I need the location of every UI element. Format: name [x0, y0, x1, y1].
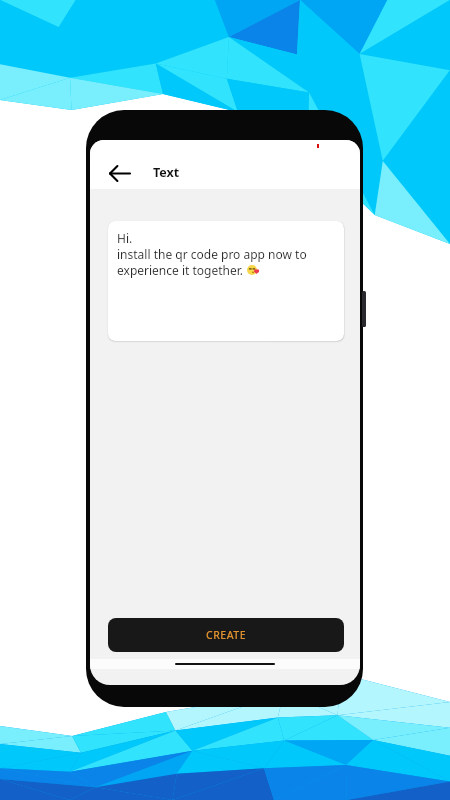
- button[interactable]: Back: [105, 158, 135, 188]
- button[interactable]: CREATE: [108, 618, 344, 652]
- staticText: install the qr code pro app now to: [117, 246, 307, 262]
- staticText: CREATE: [206, 628, 247, 642]
- button[interactable]: Hi.: [108, 221, 344, 341]
- staticText: Hi.: [117, 230, 133, 246]
- staticText: experience it together.: [117, 262, 247, 278]
- staticText: Text: [153, 164, 180, 181]
